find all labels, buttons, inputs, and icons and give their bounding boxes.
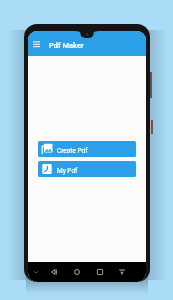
staticText: Create Pdf bbox=[57, 147, 88, 155]
button[interactable]: Home bbox=[71, 266, 83, 278]
button[interactable]: Keyboard bbox=[116, 266, 128, 278]
button[interactable]: Hide keyboard bbox=[30, 266, 42, 278]
button[interactable]: Recents bbox=[94, 266, 106, 278]
button[interactable]: Menu bbox=[30, 38, 42, 50]
staticText: My Pdf bbox=[57, 167, 78, 175]
button[interactable]: My Pdf bbox=[38, 161, 136, 177]
button[interactable]: Create Pdf bbox=[38, 141, 136, 157]
button[interactable]: Back bbox=[48, 266, 60, 278]
staticText: Pdf Maker bbox=[49, 41, 84, 50]
